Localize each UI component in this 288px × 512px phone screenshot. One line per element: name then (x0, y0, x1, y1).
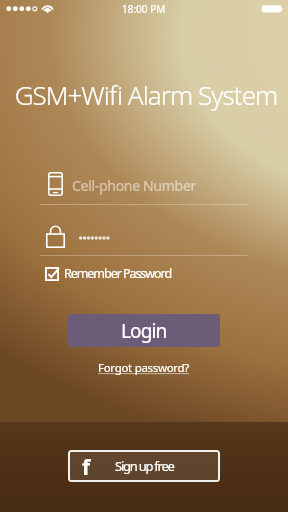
button[interactable]: Remember Password (43, 263, 174, 284)
button[interactable]: Forgot password? (95, 357, 193, 379)
staticText: Cell-phone Number (72, 176, 196, 195)
staticText: Login (121, 318, 167, 344)
button[interactable]: f (68, 450, 220, 482)
staticText: Remember Password (64, 265, 172, 282)
button[interactable] (40, 220, 248, 255)
staticText: GSM+Wifi Alarm System (2, 77, 288, 112)
staticText: Sign up free (115, 457, 174, 475)
staticText: 18:00 PM (122, 2, 166, 16)
staticText: f (82, 453, 91, 482)
button[interactable]: Cell-phone Number (40, 168, 248, 204)
button[interactable]: Login (68, 314, 220, 347)
